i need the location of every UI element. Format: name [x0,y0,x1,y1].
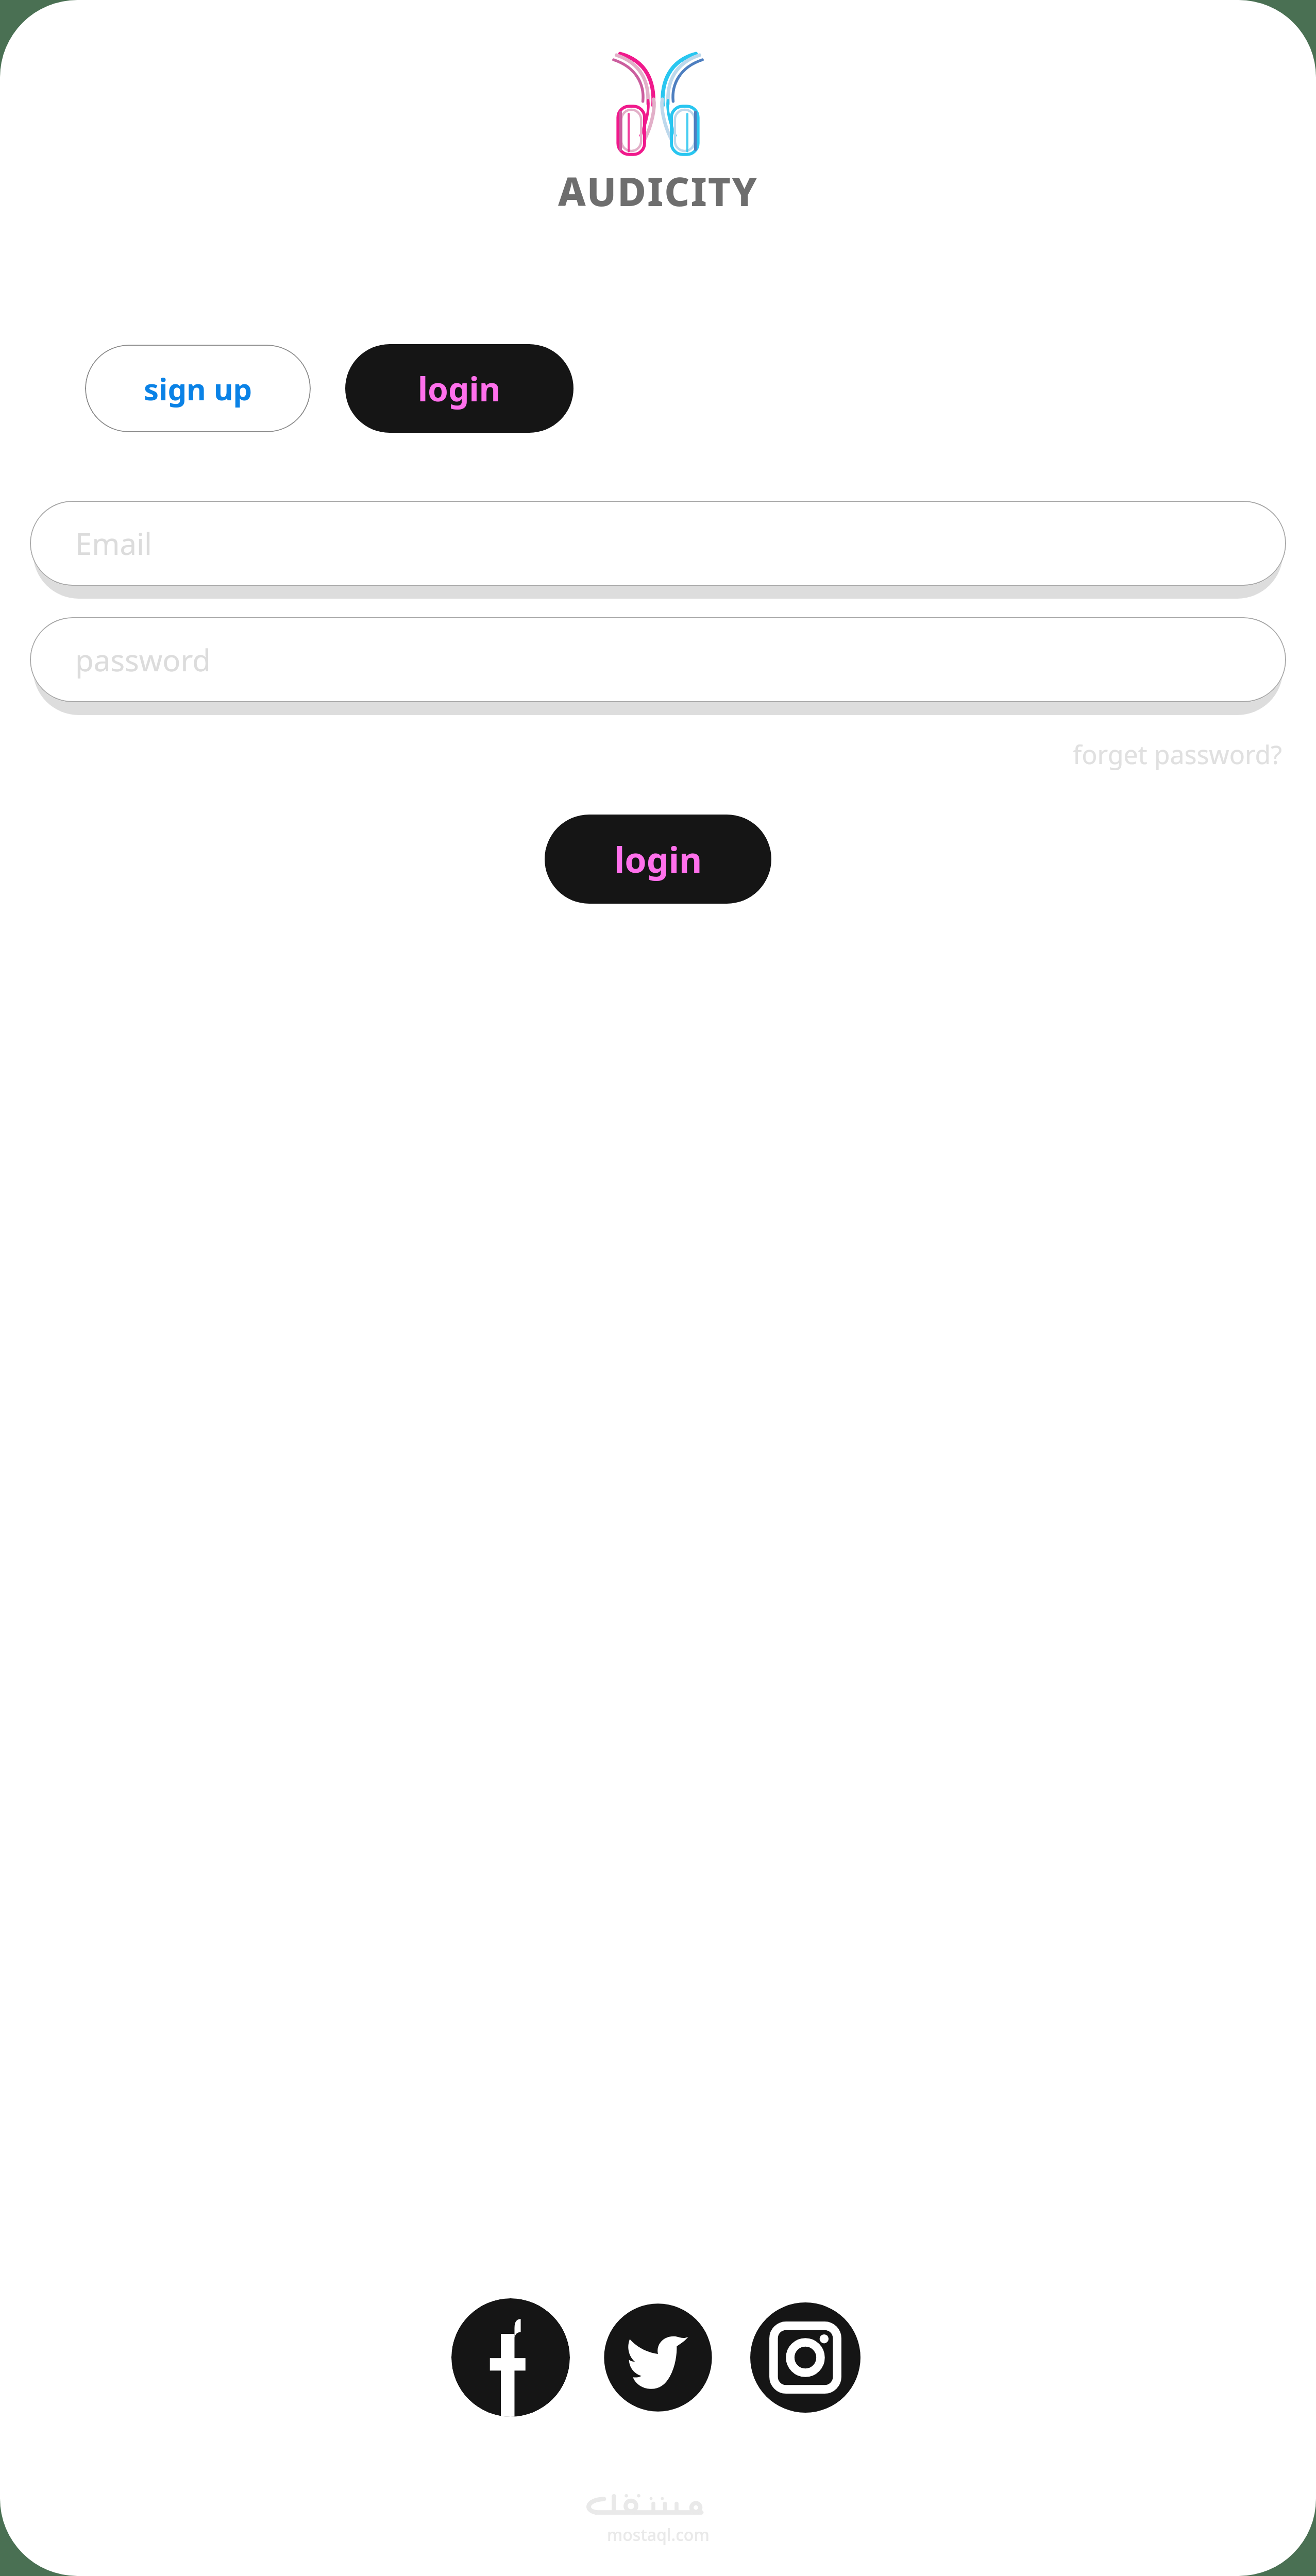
staticText: password [75,639,211,680]
staticText: sign up [144,368,252,409]
staticText: Email [75,523,152,564]
button[interactable]: sign up [85,345,311,432]
button[interactable]: Facebook [451,2298,570,2417]
staticText: AUDICITY [558,164,758,218]
button[interactable]: Email [30,501,1286,586]
button[interactable]: login [345,344,573,433]
staticText: login [614,835,702,883]
staticText: login [418,366,501,411]
button[interactable]: Twitter [599,2298,717,2417]
button[interactable]: password [30,617,1286,702]
staticText: mostaql.com [607,2523,710,2546]
staticText: forget password? [1073,737,1282,772]
button[interactable]: login [545,815,771,904]
button[interactable]: Instagram [746,2298,865,2417]
button[interactable]: forget password? [1070,734,1285,775]
